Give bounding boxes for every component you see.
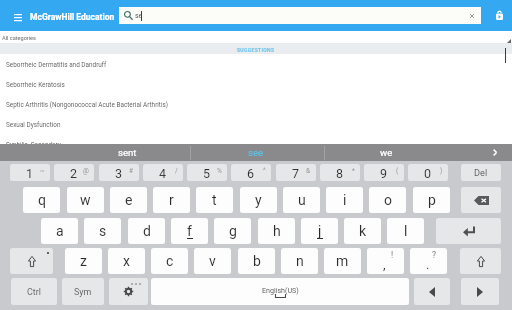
- staticText: k: [359, 223, 367, 239]
- button[interactable]: Del: [461, 164, 501, 181]
- button[interactable]: l: [387, 218, 424, 244]
- staticText: we: [380, 147, 393, 158]
- staticText: Seborrheic Keratosis: [6, 81, 65, 89]
- staticText: @: [83, 167, 89, 175]
- staticText: *: [352, 167, 355, 175]
- button[interactable]: se: [119, 7, 481, 24]
- button[interactable]: Sexual Dysfunction: [0, 114, 512, 134]
- staticText: o: [384, 192, 392, 208]
- staticText: 7: [292, 166, 300, 181]
- staticText: Del: [474, 167, 488, 178]
- staticText: f: [187, 223, 192, 239]
- button[interactable]: a: [41, 218, 78, 244]
- button[interactable]: m: [324, 248, 361, 274]
- staticText: n: [296, 253, 304, 269]
- staticText: sent: [118, 147, 137, 158]
- staticText: All categories: [2, 35, 36, 42]
- button[interactable]: Cursor left: [414, 278, 450, 305]
- button[interactable]: x: [108, 248, 145, 274]
- staticText: 5: [203, 166, 211, 181]
- staticText: 0: [424, 166, 432, 181]
- staticText: u: [298, 192, 306, 208]
- staticText: Seborrheic Dermatitis and Dandruff: [6, 61, 107, 69]
- button[interactable]: Enter: [436, 218, 501, 244]
- button[interactable]: 1: [10, 164, 50, 181]
- staticText: s: [99, 223, 107, 239]
- button[interactable]: v: [194, 248, 231, 274]
- button[interactable]: Store: [488, 5, 510, 26]
- staticText: %: [217, 167, 222, 175]
- button[interactable]: 4: [143, 164, 183, 181]
- button[interactable]: Sym: [62, 278, 104, 305]
- staticText: se: [135, 12, 143, 20]
- staticText: j: [318, 223, 322, 239]
- staticText: 3: [115, 166, 123, 181]
- button[interactable]: t: [196, 187, 233, 213]
- button[interactable]: r: [153, 187, 190, 213]
- button[interactable]: c: [151, 248, 188, 274]
- button[interactable]: 8: [320, 164, 360, 181]
- button[interactable]: k: [344, 218, 381, 244]
- button[interactable]: p: [413, 187, 450, 213]
- button[interactable]: 3: [99, 164, 139, 181]
- button[interactable]: Menu: [7, 7, 29, 26]
- button[interactable]: 2: [54, 164, 94, 181]
- button[interactable]: All categories: [0, 31, 512, 43]
- button[interactable]: 7: [276, 164, 316, 181]
- button[interactable]: o: [369, 187, 406, 213]
- button[interactable]: w: [67, 187, 104, 213]
- button[interactable]: q: [23, 187, 60, 213]
- button[interactable]: Settings: [109, 278, 148, 305]
- button[interactable]: we: [324, 144, 450, 161]
- staticText: e: [125, 192, 133, 208]
- button[interactable]: Syphilis, Secondary: [0, 134, 512, 154]
- staticText: y: [255, 192, 262, 208]
- staticText: b: [253, 253, 261, 269]
- button[interactable]: Clear search: [462, 7, 481, 24]
- staticText: Syphilis, Secondary: [6, 141, 61, 149]
- button[interactable]: 5: [187, 164, 227, 181]
- button[interactable]: i: [326, 187, 363, 213]
- button[interactable]: Shift: [10, 248, 53, 274]
- staticText: Septic Arthritis (Nongonococcal Acute Ba…: [6, 101, 169, 109]
- staticText: a: [56, 223, 64, 239]
- button[interactable]: s: [84, 218, 121, 244]
- button[interactable]: Septic Arthritis (Nongonococcal Acute Ba…: [0, 94, 512, 114]
- button[interactable]: Backspace: [461, 187, 501, 213]
- staticText: m: [336, 253, 349, 269]
- staticText: q: [38, 192, 46, 208]
- button[interactable]: Space: [151, 278, 409, 305]
- button[interactable]: 6: [231, 164, 271, 181]
- button[interactable]: ,: [367, 248, 404, 274]
- button[interactable]: d: [128, 218, 165, 244]
- button[interactable]: 9: [364, 164, 404, 181]
- staticText: t: [212, 192, 217, 208]
- staticText: w: [80, 192, 91, 208]
- button[interactable]: sent: [62, 144, 190, 161]
- staticText: #: [129, 167, 134, 175]
- staticText: Sexual Dysfunction: [6, 121, 61, 129]
- button[interactable]: 0: [408, 164, 448, 181]
- button[interactable]: .: [410, 248, 447, 274]
- staticText: 1: [26, 166, 34, 181]
- button[interactable]: Ctrl: [11, 278, 57, 305]
- button[interactable]: n: [281, 248, 318, 274]
- button[interactable]: Shift: [460, 248, 501, 274]
- button[interactable]: Seborrheic Dermatitis and Dandruff: [0, 54, 512, 74]
- button[interactable]: z: [65, 248, 102, 274]
- button[interactable]: y: [240, 187, 277, 213]
- button[interactable]: g: [214, 218, 251, 244]
- staticText: c: [166, 253, 174, 269]
- button[interactable]: b: [238, 248, 275, 274]
- button[interactable]: Cursor right: [461, 278, 499, 305]
- staticText: ?: [432, 250, 437, 260]
- button[interactable]: u: [283, 187, 320, 213]
- button[interactable]: h: [258, 218, 295, 244]
- staticText: ~: [40, 167, 45, 175]
- button[interactable]: j: [301, 218, 338, 244]
- button[interactable]: see: [190, 144, 324, 161]
- button[interactable]: Seborrheic Keratosis: [0, 74, 512, 94]
- button[interactable]: More suggestions: [484, 144, 510, 161]
- button[interactable]: f: [171, 218, 208, 244]
- button[interactable]: e: [110, 187, 147, 213]
